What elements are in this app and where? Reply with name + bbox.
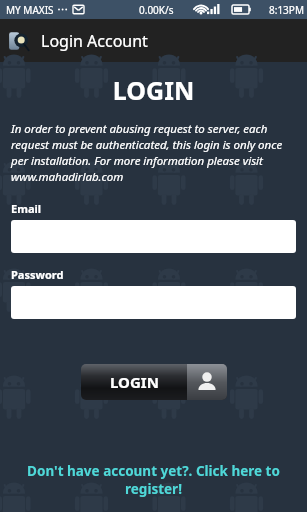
staticText: Login Account — [41, 30, 148, 52]
button[interactable]: Password input — [11, 286, 296, 319]
staticText: Email — [11, 201, 42, 216]
staticText: MY MAXIS — [6, 3, 54, 17]
button[interactable]: LOGIN — [81, 364, 227, 400]
staticText: Password — [11, 267, 64, 282]
staticText: LOGIN — [110, 372, 159, 392]
staticText: In order to prevent abusing request to s… — [11, 121, 296, 185]
staticText: 0.00K/s — [139, 3, 174, 17]
staticText: LOGIN — [11, 73, 296, 107]
button[interactable]: App icon — [0, 19, 307, 62]
other: App icon — [8, 30, 30, 52]
staticText: 8:13PM — [269, 3, 304, 17]
button[interactable]: Email input — [11, 220, 296, 253]
button[interactable]: Don't have account yet?. Click here to r… — [11, 462, 296, 498]
